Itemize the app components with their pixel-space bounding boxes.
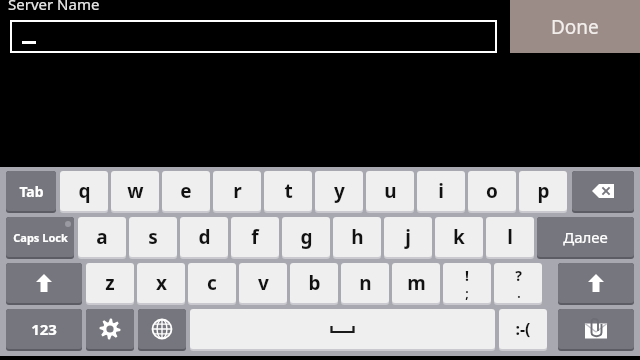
staticText: l: [507, 224, 513, 250]
button[interactable]: c: [188, 263, 236, 303]
staticText: t: [284, 178, 293, 204]
button[interactable]: h: [333, 217, 381, 257]
button[interactable]: w: [111, 171, 159, 211]
staticText: .: [517, 285, 521, 301]
staticText: f: [251, 224, 259, 250]
button[interactable]: x: [137, 263, 185, 303]
staticText: d: [198, 224, 211, 250]
staticText: :-(: [515, 318, 531, 340]
button[interactable]: Shift: [558, 263, 634, 303]
button[interactable]: f: [231, 217, 279, 257]
staticText: i: [438, 178, 444, 204]
staticText: Далее: [563, 227, 608, 247]
button[interactable]: :-(: [499, 309, 547, 349]
staticText: k: [453, 224, 465, 250]
button[interactable]: Settings: [86, 309, 134, 349]
staticText: !: [465, 266, 469, 285]
button[interactable]: z: [86, 263, 134, 303]
button[interactable]: j: [384, 217, 432, 257]
button[interactable]: v: [239, 263, 287, 303]
button[interactable]: Shift: [6, 263, 82, 303]
button[interactable]: o: [468, 171, 516, 211]
staticText: g: [300, 224, 313, 250]
button[interactable]: Tab: [6, 171, 56, 211]
button[interactable]: d: [180, 217, 228, 257]
staticText: 123: [31, 319, 57, 339]
button[interactable]: u: [366, 171, 414, 211]
button[interactable]: [10, 20, 497, 53]
staticText: q: [78, 178, 91, 204]
staticText: r: [233, 178, 242, 204]
staticText: w: [127, 178, 144, 204]
staticText: u: [384, 178, 397, 204]
staticText: h: [351, 224, 364, 250]
button[interactable]: Attach: [558, 309, 634, 349]
button[interactable]: m: [392, 263, 440, 303]
staticText: Done: [551, 14, 599, 40]
button[interactable]: Backspace: [572, 171, 634, 211]
button[interactable]: l: [486, 217, 534, 257]
staticText: Caps Lock: [13, 230, 68, 245]
button[interactable]: y: [315, 171, 363, 211]
staticText: z: [105, 270, 115, 296]
button[interactable]: !: [443, 263, 491, 303]
button[interactable]: e: [162, 171, 210, 211]
button[interactable]: 123: [6, 309, 82, 349]
button[interactable]: s: [129, 217, 177, 257]
button[interactable]: i: [417, 171, 465, 211]
staticText: e: [180, 178, 192, 204]
button[interactable]: r: [213, 171, 261, 211]
button[interactable]: t: [264, 171, 312, 211]
button[interactable]: q: [60, 171, 108, 211]
staticText: v: [258, 270, 269, 296]
staticText: b: [308, 270, 321, 296]
staticText: c: [207, 270, 217, 296]
staticText: s: [148, 224, 158, 250]
button[interactable]: Done: [510, 0, 640, 53]
button[interactable]: k: [435, 217, 483, 257]
button[interactable]: a: [78, 217, 126, 257]
staticText: o: [486, 178, 498, 204]
button[interactable]: Space: [190, 309, 495, 349]
staticText: j: [405, 224, 411, 250]
staticText: x: [156, 270, 167, 296]
staticText: y: [334, 178, 345, 204]
button[interactable]: p: [519, 171, 567, 211]
button[interactable]: Caps Lock: [6, 217, 74, 257]
staticText: Tab: [19, 182, 44, 201]
staticText: ;: [465, 285, 469, 301]
staticText: ?: [515, 266, 522, 285]
staticText: Server Name: [8, 0, 100, 10]
button[interactable]: Change language: [138, 309, 186, 349]
staticText: m: [407, 270, 426, 296]
button[interactable]: b: [290, 263, 338, 303]
button[interactable]: n: [341, 263, 389, 303]
button[interactable]: ?: [494, 263, 542, 303]
staticText: a: [96, 224, 108, 250]
button[interactable]: Далее: [537, 217, 634, 257]
staticText: p: [537, 178, 550, 204]
staticText: n: [359, 270, 372, 296]
button[interactable]: g: [282, 217, 330, 257]
